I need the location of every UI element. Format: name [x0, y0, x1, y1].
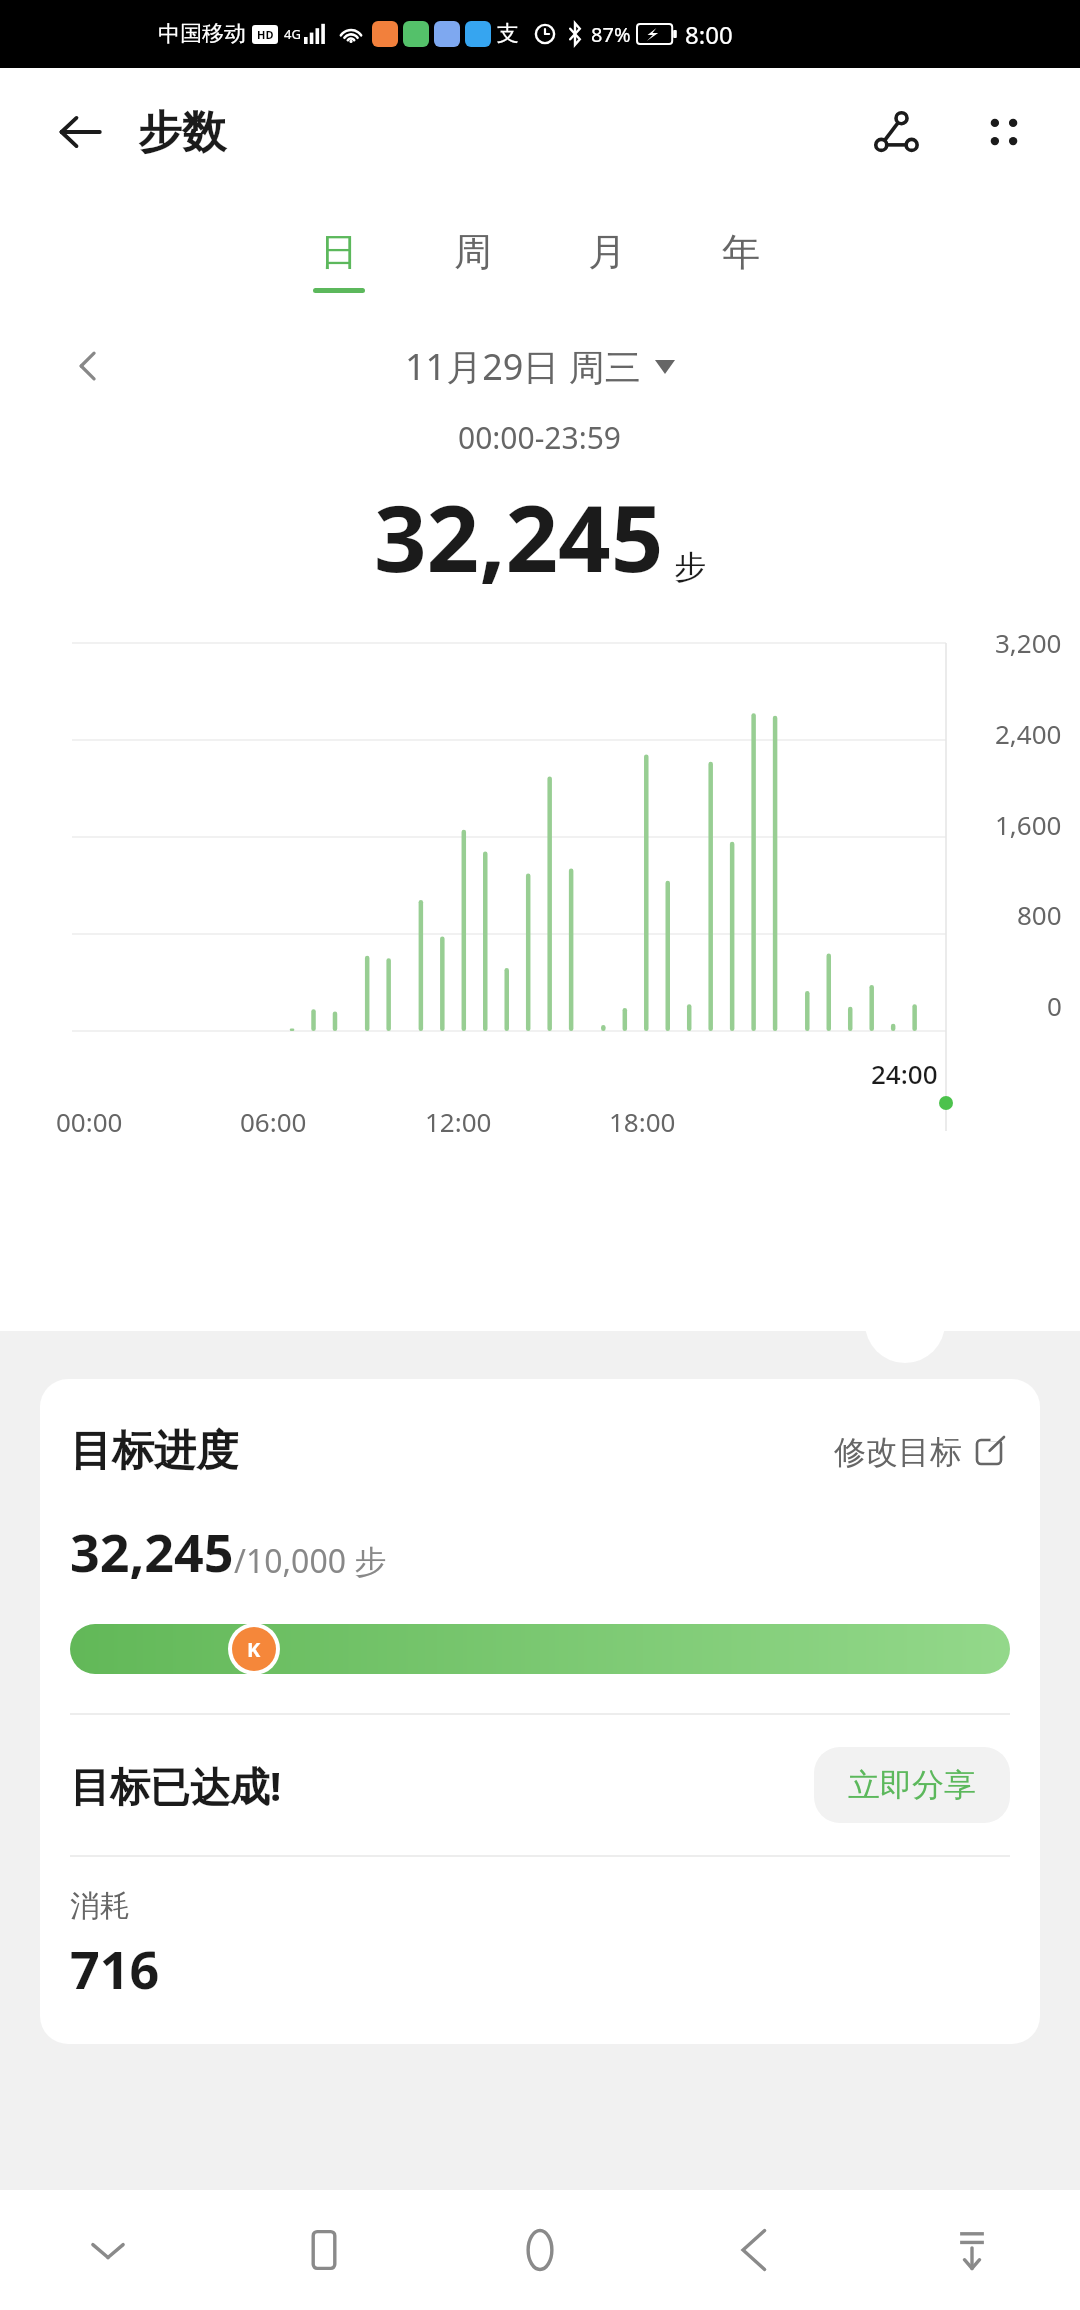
staticText: 0: [1047, 988, 1062, 1023]
staticText: 32,245: [70, 1516, 234, 1587]
button[interactable]: Collapse: [0, 2190, 216, 2310]
button[interactable]: Back: [648, 2190, 864, 2310]
button[interactable]: Recents: [216, 2190, 432, 2310]
button[interactable]: Share: [860, 96, 932, 168]
staticText: 周: [454, 228, 492, 276]
staticText: 716: [70, 1933, 160, 2004]
staticText: 目标已达成!: [70, 1758, 282, 1813]
staticText: 2,400: [995, 716, 1062, 751]
staticText: 消耗: [70, 1887, 130, 1925]
button[interactable]: Home: [432, 2190, 648, 2310]
button[interactable]: 月: [540, 222, 674, 299]
button[interactable]: Previous day: [62, 338, 118, 394]
staticText: 1,600: [995, 807, 1062, 842]
staticText: 年: [722, 228, 760, 276]
staticText: 3,200: [995, 625, 1062, 660]
button[interactable]: Download: [864, 2190, 1080, 2310]
staticText: 87%: [591, 21, 631, 48]
staticText: K: [247, 1636, 261, 1663]
staticText: 24:00: [871, 1056, 938, 1091]
staticText: 32,245: [374, 474, 664, 599]
staticText: 日: [320, 228, 358, 276]
staticText: 月: [588, 228, 626, 276]
staticText: 00:00-23:59: [458, 417, 622, 458]
button[interactable]: 立即分享: [814, 1747, 1010, 1823]
staticText: 12:00: [425, 1104, 492, 1139]
button[interactable]: Back: [48, 100, 112, 164]
staticText: 步: [674, 547, 706, 587]
staticText: /10,000 步: [234, 1539, 387, 1583]
button[interactable]: Expand details: [865, 1283, 945, 1363]
staticText: 步数: [138, 105, 226, 160]
staticText: HD: [257, 27, 274, 42]
button[interactable]: More options: [968, 96, 1040, 168]
staticText: 8:00: [685, 18, 733, 51]
staticText: 00:00: [56, 1104, 123, 1139]
staticText: 11月29日 周三: [405, 342, 641, 391]
staticText: 800: [1017, 897, 1062, 932]
staticText: 18:00: [609, 1104, 676, 1139]
staticText: 06:00: [240, 1104, 307, 1139]
button[interactable]: 年: [674, 222, 808, 299]
staticText: 4G: [284, 25, 301, 43]
staticText: 支: [497, 20, 519, 48]
button[interactable]: 11月29日 周三: [405, 342, 675, 391]
button[interactable]: 周: [406, 222, 540, 299]
staticText: 目标进度: [70, 1425, 238, 1478]
staticText: 修改目标: [834, 1432, 962, 1472]
button[interactable]: 日: [272, 222, 406, 299]
staticText: 中国移动: [158, 20, 246, 48]
staticText: 立即分享: [848, 1765, 976, 1805]
button[interactable]: 修改目标: [828, 1426, 1010, 1478]
